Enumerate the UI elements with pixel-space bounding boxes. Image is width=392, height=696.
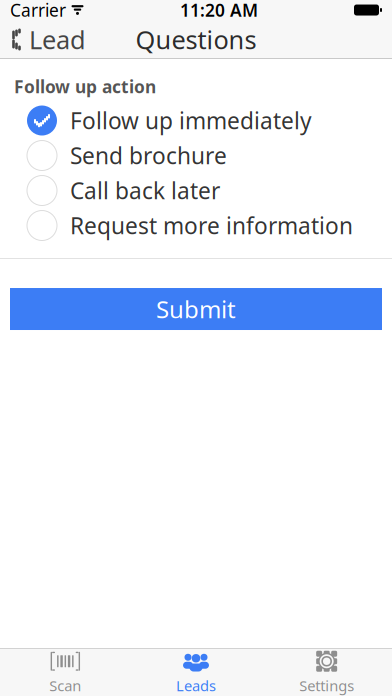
button[interactable]: Submit bbox=[10, 288, 382, 330]
button[interactable]: Leads bbox=[131, 649, 261, 696]
button[interactable]: Lead bbox=[0, 20, 96, 59]
staticText: 11:20 AM bbox=[180, 0, 258, 21]
button[interactable]: Send brochure bbox=[0, 138, 392, 173]
button[interactable]: Settings bbox=[261, 649, 392, 696]
staticText: Follow up action bbox=[14, 75, 156, 98]
staticText: Request more information bbox=[70, 210, 353, 241]
staticText: Questions bbox=[135, 23, 256, 56]
button[interactable]: Request more information bbox=[0, 208, 392, 243]
staticText: Carrier bbox=[10, 0, 66, 21]
staticText: Scan bbox=[49, 676, 81, 695]
button[interactable]: Call back later bbox=[0, 173, 392, 208]
button[interactable]: Follow up immediately bbox=[0, 103, 392, 138]
staticText: Submit bbox=[156, 293, 236, 325]
staticText: Call back later bbox=[70, 175, 220, 206]
staticText: Lead bbox=[29, 23, 86, 56]
staticText: Follow up immediately bbox=[70, 105, 312, 136]
staticText: Settings bbox=[299, 676, 354, 695]
button[interactable]: Scan bbox=[0, 649, 131, 696]
staticText: Send brochure bbox=[70, 140, 227, 171]
staticText: Leads bbox=[176, 676, 216, 695]
